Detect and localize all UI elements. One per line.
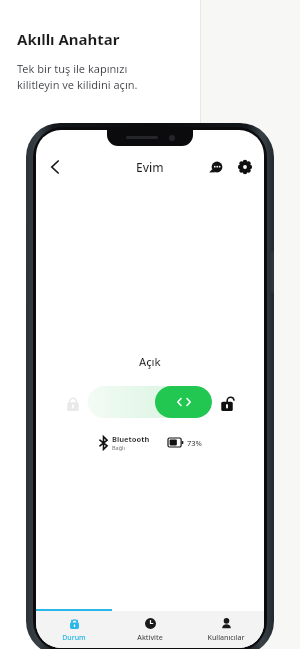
staticText: Tek bir tuş ile kapınızı kilitleyin ve k… — [17, 61, 138, 92]
staticText: Bluetooth — [112, 434, 150, 444]
button[interactable]: Durum — [36, 611, 112, 648]
button[interactable]: Settings — [234, 156, 256, 178]
staticText: Evim — [136, 159, 164, 175]
button[interactable]: Aktivite — [112, 611, 188, 648]
staticText: Bağlı — [112, 444, 125, 451]
staticText: Akıllı Anahtar — [17, 29, 120, 49]
staticText: Kullanıcılar — [207, 633, 245, 643]
button[interactable]: Unlock slider — [88, 386, 212, 418]
button[interactable]: Kullanıcılar — [188, 611, 264, 648]
staticText: Durum — [62, 633, 86, 643]
staticText: 73% — [187, 438, 202, 448]
staticText: Aktivite — [137, 633, 163, 643]
button[interactable]: Messages — [206, 156, 228, 178]
button[interactable]: Back — [42, 154, 68, 180]
staticText: Açık — [139, 354, 161, 369]
